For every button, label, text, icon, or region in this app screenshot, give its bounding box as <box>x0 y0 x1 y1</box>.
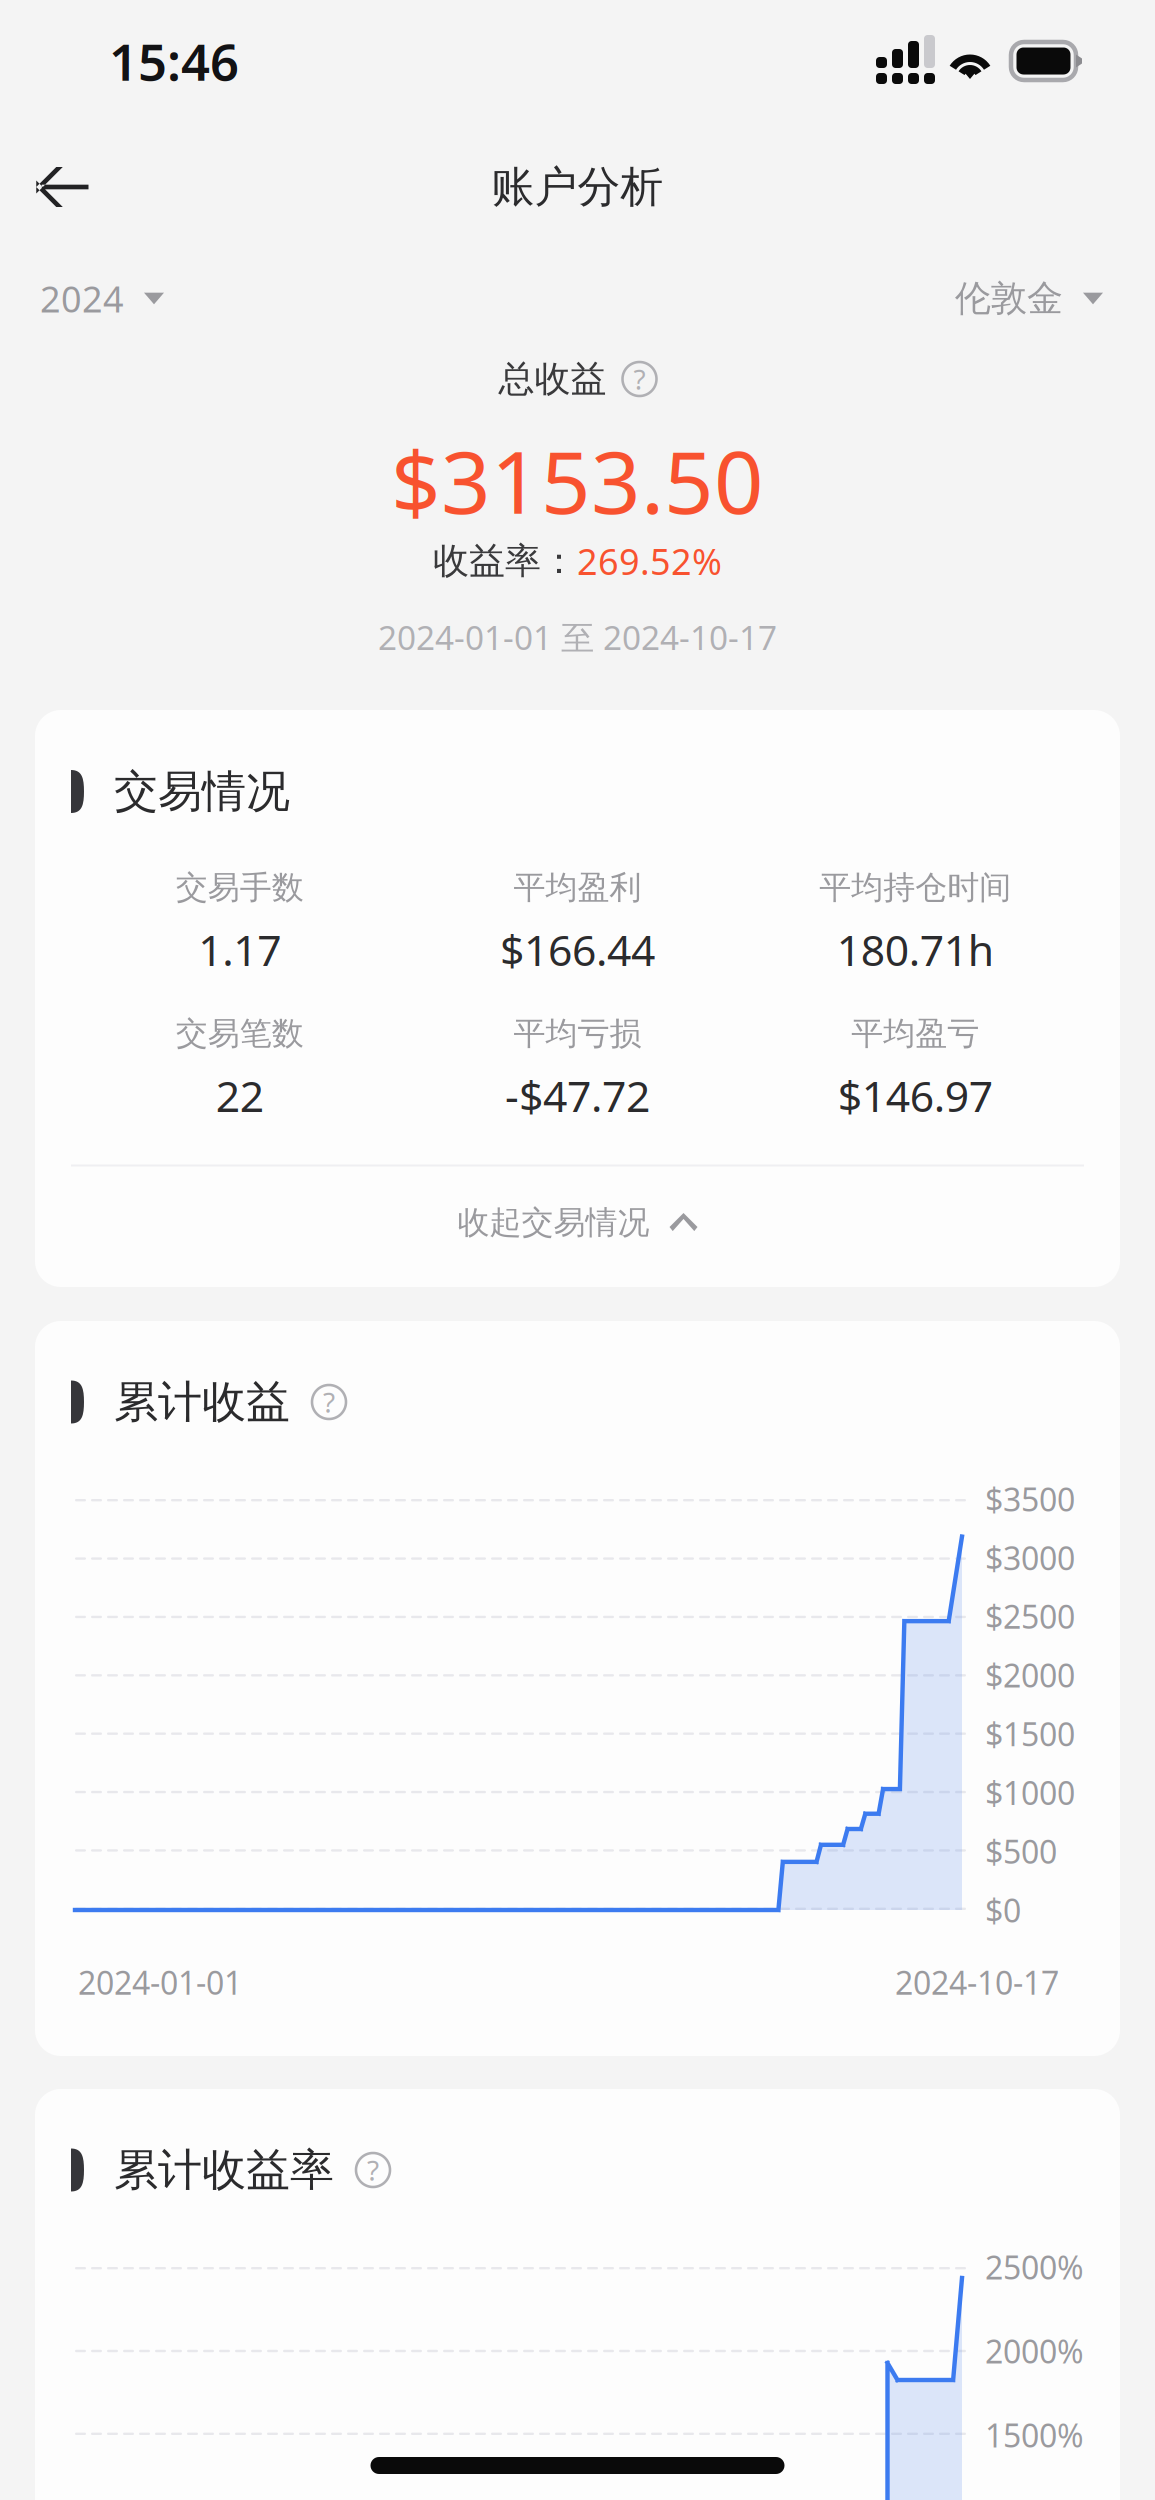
staticText: 22 <box>216 1067 264 1124</box>
staticText: 2024 <box>40 275 124 322</box>
staticText: 累计收益率 <box>114 2143 334 2197</box>
staticText: -$47.72 <box>505 1067 650 1124</box>
button[interactable]: 总收益说明 <box>622 362 656 396</box>
staticText: $3000 <box>985 1536 1075 1579</box>
button[interactable]: 累计收益率说明 <box>356 2153 390 2187</box>
staticText: $2000 <box>985 1654 1075 1696</box>
staticText: 交易手数 <box>176 868 304 907</box>
staticText: 平均盈利 <box>513 868 641 907</box>
staticText: 1.17 <box>198 921 281 978</box>
staticText: 2024-01-01 至 2024-10-17 <box>378 615 777 659</box>
button[interactable]: 伦敦金 <box>955 251 1103 346</box>
staticText: $146.97 <box>838 1067 993 1124</box>
staticText: ? <box>633 360 645 398</box>
staticText: 交易情况 <box>114 764 290 818</box>
staticText: 收起交易情况 <box>457 1203 649 1242</box>
staticText: 交易笔数 <box>176 1014 304 1053</box>
staticText: $2500 <box>985 1595 1075 1638</box>
staticText: $3153.50 <box>391 422 764 538</box>
staticText: 平均亏损 <box>513 1014 641 1053</box>
button[interactable]: 2024 <box>40 251 164 346</box>
staticText: 2024-01-01 <box>78 1961 242 2003</box>
staticText: $1000 <box>985 1771 1075 1814</box>
staticText: $1500 <box>985 1713 1075 1755</box>
staticText: 2000% <box>985 2330 1084 2372</box>
staticText: $0 <box>985 1889 1021 1931</box>
staticText: 伦敦金 <box>955 276 1063 321</box>
staticText: $3500 <box>985 1478 1075 1520</box>
staticText: 2500% <box>985 2246 1084 2288</box>
button[interactable]: 收起交易情况 <box>71 1166 1084 1278</box>
staticText: $166.44 <box>500 921 655 978</box>
staticText: ? <box>367 2151 379 2189</box>
staticText: 总收益 <box>498 357 606 401</box>
button[interactable]: 返回 <box>1 124 127 250</box>
staticText: 账户分析 <box>491 161 663 213</box>
staticText: ? <box>323 1383 335 1421</box>
staticText: 2024-10-17 <box>895 1961 1059 2003</box>
staticText: 269.52% <box>577 537 722 585</box>
staticText: 平均盈亏 <box>851 1014 979 1053</box>
staticText: 平均持仓时间 <box>819 868 1011 907</box>
staticText: 180.71h <box>837 921 994 978</box>
staticText: 收益率： <box>433 539 577 583</box>
staticText: $500 <box>985 1830 1057 1872</box>
staticText: 1500% <box>985 2414 1084 2456</box>
staticText: 累计收益 <box>114 1375 290 1429</box>
button[interactable]: 累计收益说明 <box>312 1385 346 1419</box>
staticText: 15:46 <box>109 27 239 95</box>
